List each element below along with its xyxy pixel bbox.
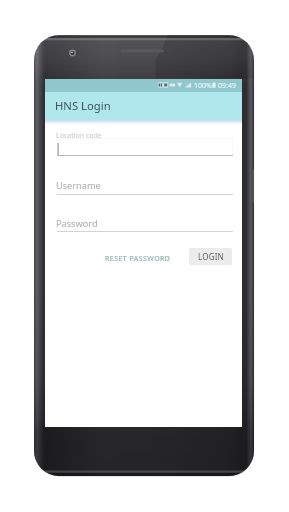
staticText: 09:49: [218, 81, 236, 91]
button[interactable]: LOGIN: [189, 248, 232, 265]
staticText: HNS Login: [55, 98, 111, 113]
button[interactable]: [57, 138, 233, 156]
staticText: Location code: [56, 131, 102, 141]
staticText: RESET PASSWORD: [105, 254, 171, 264]
staticText: 100%: [194, 81, 212, 91]
staticText: Password: [56, 217, 98, 230]
button[interactable]: RESET PASSWORD: [100, 249, 176, 268]
staticText: Username: [56, 179, 101, 192]
staticText: LOGIN: [198, 251, 224, 262]
